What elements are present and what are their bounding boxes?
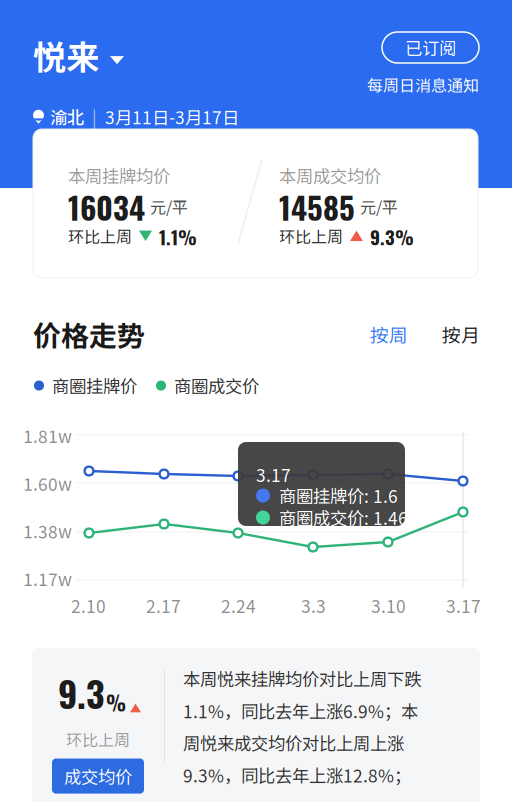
staticText: 元/平 <box>360 195 398 218</box>
staticText: 14585 <box>279 184 355 230</box>
staticText: 9.3 <box>58 666 105 719</box>
staticText: 本周挂牌均价 <box>68 163 170 188</box>
staticText: 商圈成交价 <box>174 373 259 398</box>
staticText: 环比上周 <box>68 224 132 247</box>
staticText: 环比上周 <box>66 727 130 751</box>
staticText: 本周成交均价 <box>279 163 381 188</box>
button[interactable]: 按月 <box>408 321 480 348</box>
staticText: 环比上周 <box>279 224 343 247</box>
staticText: 按周 <box>370 321 408 348</box>
staticText: 3.10 <box>371 593 406 618</box>
button[interactable]: 按周 <box>370 321 408 348</box>
staticText: 3.17 <box>446 593 481 618</box>
staticText: 元/平 <box>150 195 188 218</box>
staticText: 每周日消息通知 <box>367 73 479 96</box>
staticText: 商圈成交价: 1.46 <box>279 505 408 530</box>
staticText: 9.3% <box>370 223 414 251</box>
staticText: 价格走势 <box>33 314 145 354</box>
staticText: 商圈挂牌价: 1.6 <box>279 483 398 508</box>
staticText: 1.1% <box>159 223 197 251</box>
staticText: 2.10 <box>71 593 106 618</box>
staticText: 3月11日-3月17日 <box>105 104 239 129</box>
staticText: 1.60w <box>23 471 72 496</box>
staticText: 3.17 <box>256 462 291 487</box>
staticText: 按月 <box>442 321 480 348</box>
staticText: 2.24 <box>221 593 256 618</box>
staticText: % <box>106 688 126 717</box>
staticText: 悦来 <box>33 31 99 79</box>
staticText: 16034 <box>68 184 145 230</box>
button[interactable]: 成交均价 <box>52 758 144 794</box>
staticText: 1.17w <box>23 566 72 591</box>
staticText: 已订阅 <box>405 35 456 60</box>
staticText: | <box>92 104 97 129</box>
button[interactable]: 悦来 <box>33 31 124 79</box>
staticText: 渝北 <box>50 104 84 129</box>
staticText: 成交均价 <box>64 763 132 789</box>
staticText: 商圈挂牌价 <box>52 373 137 398</box>
staticText: 本周悦来挂牌均价对比上周下跌1.1%，同比去年上涨6.9%；本周悦来成交均价对比… <box>183 666 421 787</box>
staticText: 3.3 <box>301 593 326 618</box>
staticText: 1.38w <box>23 518 72 543</box>
button[interactable]: 已订阅 <box>382 32 479 63</box>
staticText: 2.17 <box>146 593 181 618</box>
staticText: 1.81w <box>23 423 72 448</box>
